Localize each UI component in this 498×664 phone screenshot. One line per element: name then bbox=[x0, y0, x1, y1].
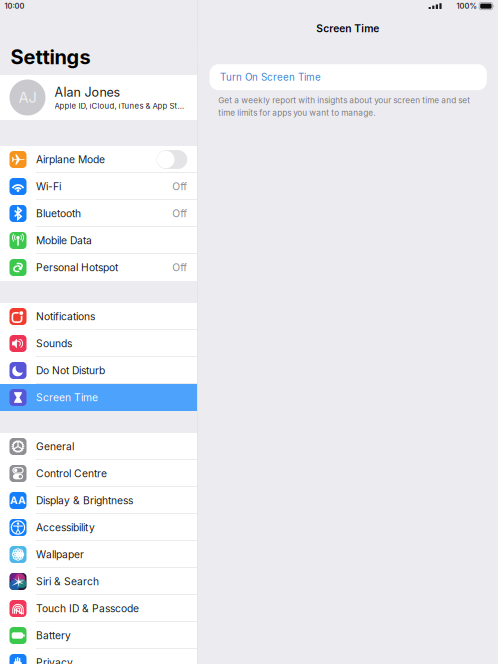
button[interactable]: Bluetooth bbox=[0, 200, 197, 227]
staticText: Privacy bbox=[36, 656, 73, 664]
staticText: Accessibility bbox=[36, 521, 95, 534]
staticText: Do Not Disturb bbox=[36, 364, 105, 377]
staticText: 10:00 bbox=[5, 2, 25, 11]
staticText: Alan Jones bbox=[54, 84, 120, 100]
button[interactable]: AJ bbox=[0, 75, 197, 120]
staticText: Bluetooth bbox=[36, 207, 81, 220]
button[interactable]: General bbox=[0, 433, 197, 460]
staticText: Screen Time bbox=[316, 22, 379, 35]
staticText: Turn On Screen Time bbox=[220, 71, 321, 83]
staticText: Touch ID & Passcode bbox=[36, 602, 139, 615]
staticText: Mobile Data bbox=[36, 234, 92, 247]
button[interactable]: Turn On Screen Time bbox=[210, 64, 487, 90]
button[interactable]: Mobile Data bbox=[0, 227, 197, 254]
button[interactable]: Airplane Mode bbox=[0, 146, 197, 173]
button[interactable]: Sounds bbox=[0, 330, 197, 357]
button[interactable]: Screen Time bbox=[0, 384, 197, 411]
staticText: General bbox=[36, 440, 74, 453]
staticText: 100% bbox=[457, 2, 477, 11]
staticText: Notifications bbox=[36, 310, 95, 323]
button[interactable]: Do Not Disturb bbox=[0, 357, 197, 384]
staticText: Apple ID, iCloud, iTunes & App St… bbox=[54, 101, 184, 111]
button[interactable]: Control Centre bbox=[0, 460, 197, 487]
staticText: Settings bbox=[11, 45, 91, 69]
button[interactable]: Accessibility bbox=[0, 514, 197, 541]
button[interactable]: Siri & Search bbox=[0, 568, 197, 595]
staticText: Display & Brightness bbox=[36, 494, 133, 507]
staticText: AA bbox=[10, 494, 26, 507]
staticText: Get a weekly report with insights about … bbox=[218, 95, 470, 118]
button[interactable]: Notifications bbox=[0, 303, 197, 330]
staticText: Off bbox=[172, 261, 187, 274]
staticText: Battery bbox=[36, 629, 71, 642]
staticText: Airplane Mode bbox=[36, 153, 105, 166]
staticText: Wallpaper bbox=[36, 548, 84, 561]
button[interactable]: AA bbox=[0, 487, 197, 514]
button[interactable]: Personal Hotspot bbox=[0, 254, 197, 281]
staticText: Siri & Search bbox=[36, 575, 99, 588]
staticText: AJ bbox=[18, 89, 36, 106]
staticText: Personal Hotspot bbox=[36, 261, 118, 274]
button[interactable]: Privacy bbox=[0, 649, 197, 664]
staticText: Wi-Fi bbox=[36, 180, 61, 193]
button[interactable]: Touch ID & Passcode bbox=[0, 595, 197, 622]
staticText: Control Centre bbox=[36, 467, 107, 480]
button[interactable]: Wi-Fi bbox=[0, 173, 197, 200]
staticText: Off bbox=[172, 207, 187, 220]
button[interactable]: Battery bbox=[0, 622, 197, 649]
button[interactable]: Wallpaper bbox=[0, 541, 197, 568]
staticText: Sounds bbox=[36, 337, 72, 350]
staticText: Screen Time bbox=[36, 391, 98, 404]
staticText: Off bbox=[172, 180, 187, 193]
